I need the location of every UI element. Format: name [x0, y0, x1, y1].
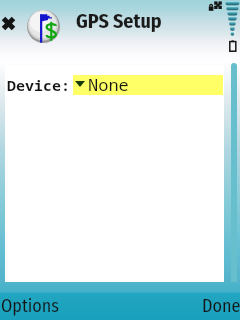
staticText: GPS Setup: [76, 9, 162, 33]
staticText: None: [88, 73, 129, 93]
button[interactable]: Options: [1, 295, 59, 317]
button[interactable]: None: [73, 75, 223, 95]
button[interactable]: Close: [1, 16, 16, 31]
staticText: Device:: [7, 75, 71, 95]
button[interactable]: Done: [202, 295, 240, 317]
